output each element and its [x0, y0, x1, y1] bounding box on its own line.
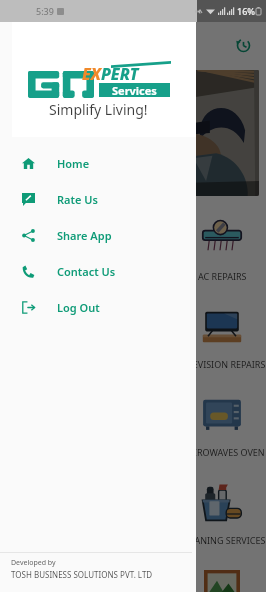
button[interactable]: Rate Us [0, 181, 196, 217]
button[interactable]: Share App [0, 217, 196, 253]
staticText: AC REPAIRS [198, 270, 247, 282]
staticText: MICROWAVES OVEN [180, 446, 265, 458]
button[interactable]: Log Out [0, 289, 196, 325]
button[interactable]: TELEVISION REPAIRS [178, 293, 266, 370]
staticText: Share App [57, 228, 112, 243]
button[interactable]: Home [0, 145, 196, 181]
staticText: 5:39 [36, 5, 54, 17]
staticText: Developed by [11, 558, 56, 568]
staticText: TOSH BUSINESS SOLUTIONS PVT. LTD [11, 569, 153, 580]
staticText: Home [57, 156, 90, 171]
staticText: 16% [237, 5, 255, 17]
staticText: Services [112, 83, 157, 97]
staticText: Log Out [57, 300, 100, 315]
staticText: Rate Us [57, 192, 98, 207]
staticText: CLEANING SERVICES [179, 534, 266, 546]
staticText: EX [82, 63, 101, 85]
staticText: TELEVISION REPAIRS [178, 358, 266, 370]
button[interactable]: Contact Us [0, 253, 196, 289]
button[interactable] [204, 570, 240, 592]
staticText: Simplify Living! [49, 100, 148, 119]
staticText: Contact Us [57, 264, 116, 279]
button[interactable]: AC REPAIRS [178, 205, 266, 282]
button[interactable]: History [231, 33, 255, 57]
button[interactable]: CLEANING SERVICES [178, 469, 266, 546]
staticText: PERT [101, 63, 139, 85]
button[interactable]: MICROWAVES OVEN [178, 381, 266, 458]
